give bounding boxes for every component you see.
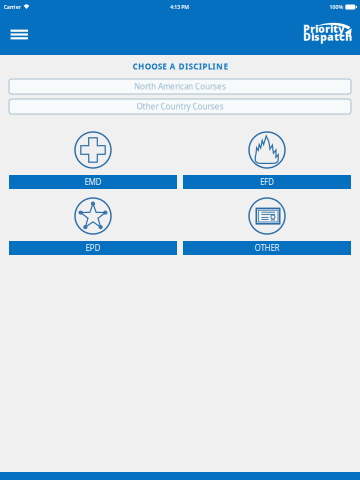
button[interactable]: OTHER	[183, 195, 351, 255]
staticText: Dispatch	[303, 29, 352, 44]
staticText: North American Courses	[134, 81, 226, 92]
button[interactable]: Other Country Courses	[9, 99, 351, 114]
staticText: EFD	[260, 177, 274, 187]
staticText: EMD	[84, 177, 101, 187]
staticText: Carrier	[3, 3, 20, 11]
staticText: 4:13 PM	[170, 3, 189, 11]
button[interactable]: North American Courses	[9, 79, 351, 94]
button[interactable]: Menu	[0, 21, 28, 47]
staticText: Priority	[303, 21, 345, 36]
button[interactable]: EMD	[9, 129, 177, 189]
staticText: OTHER	[254, 243, 279, 253]
button[interactable]: EPD	[9, 195, 177, 255]
staticText: 100%	[329, 3, 343, 11]
staticText: EPD	[85, 243, 100, 253]
staticText: Other Country Courses	[136, 101, 223, 112]
button[interactable]: EFD	[183, 129, 351, 189]
staticText: CHOOSE A DISCIPLINE	[133, 61, 227, 72]
